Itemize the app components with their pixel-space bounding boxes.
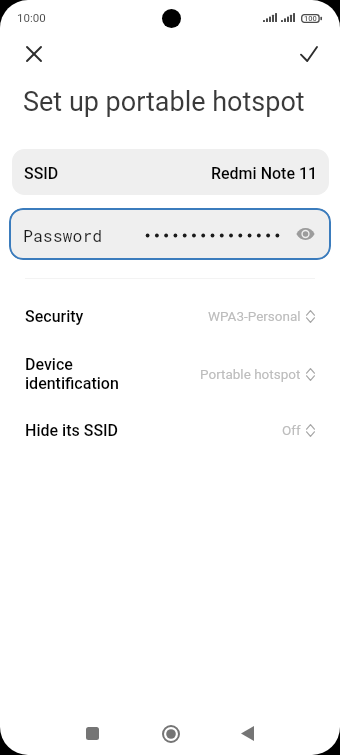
staticText: Off xyxy=(282,422,301,438)
button[interactable]: SSID xyxy=(12,149,329,195)
staticText: 100 xyxy=(304,15,317,23)
staticText: Device xyxy=(25,355,73,374)
button[interactable]: Recents xyxy=(70,711,115,755)
button[interactable]: Back xyxy=(225,711,270,755)
staticText: Hide its SSID xyxy=(25,421,119,440)
button[interactable]: Home xyxy=(148,711,193,755)
staticText: Portable hotspot xyxy=(200,366,301,382)
staticText: Security xyxy=(25,307,84,326)
button[interactable]: Password xyxy=(9,208,331,260)
staticText: Password xyxy=(23,225,103,247)
button[interactable]: Hide its SSID xyxy=(0,404,340,456)
button[interactable]: Close xyxy=(12,32,56,76)
button[interactable]: Confirm xyxy=(287,32,331,76)
staticText: 10:00 xyxy=(17,12,46,25)
staticText: Set up portable hotspot xyxy=(23,86,305,118)
staticText: Redmi Note 11 xyxy=(211,165,318,183)
button[interactable]: Show password xyxy=(288,217,322,251)
button[interactable]: Device xyxy=(0,344,340,404)
staticText: SSID xyxy=(24,165,59,183)
staticText: WPA3-Personal xyxy=(208,308,301,324)
button[interactable]: Security xyxy=(0,290,340,342)
staticText: identification xyxy=(25,374,119,393)
